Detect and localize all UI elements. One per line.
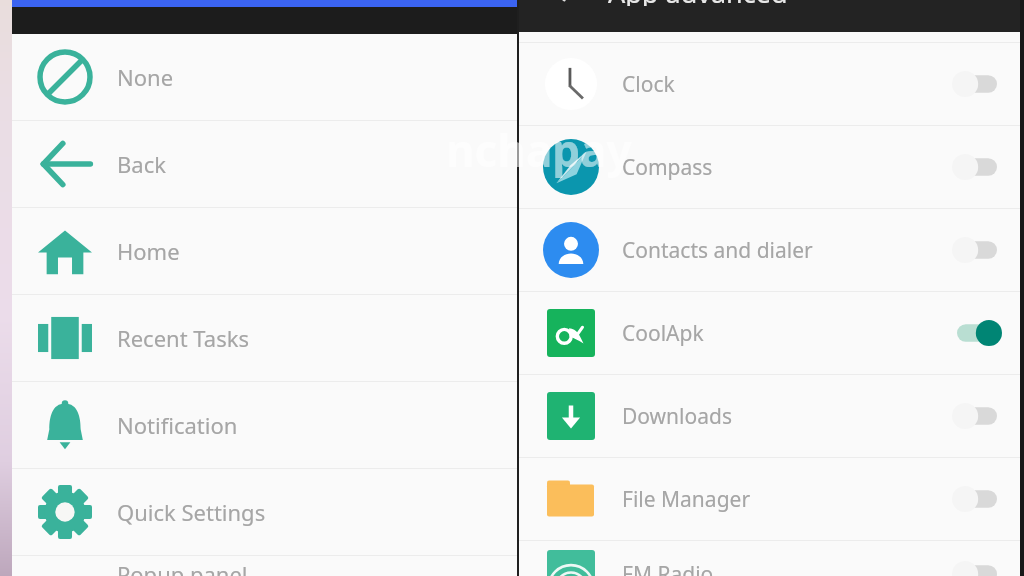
staticText: Quick Settings bbox=[117, 497, 266, 527]
button[interactable]: Toggle off bbox=[952, 399, 1002, 433]
button[interactable]: File Manager bbox=[519, 458, 1020, 541]
button[interactable]: Toggle on bbox=[952, 316, 1002, 350]
button[interactable]: Back bbox=[537, 0, 581, 6]
button[interactable]: Home bbox=[12, 208, 518, 295]
button[interactable]: Notification bbox=[12, 382, 518, 469]
staticText: CoolApk bbox=[622, 319, 952, 348]
staticText: Downloads bbox=[622, 402, 952, 431]
button[interactable]: Toggle off bbox=[952, 67, 1002, 101]
button[interactable]: Toggle off bbox=[952, 482, 1002, 516]
button[interactable]: Quick Settings bbox=[12, 469, 518, 556]
staticText: FM Radio bbox=[622, 560, 952, 576]
button[interactable]: Downloads bbox=[519, 375, 1020, 458]
staticText: Home bbox=[117, 236, 180, 266]
button[interactable]: Toggle off bbox=[952, 150, 1002, 184]
button[interactable]: FM Radio bbox=[519, 541, 1020, 576]
staticText: Recent Tasks bbox=[117, 323, 249, 353]
staticText: App advanced bbox=[608, 0, 788, 6]
staticText: Notification bbox=[117, 410, 238, 440]
button[interactable]: Clock bbox=[519, 43, 1020, 126]
button[interactable]: Popup panel bbox=[12, 556, 518, 576]
button[interactable]: Recent Tasks bbox=[12, 295, 518, 382]
button[interactable]: Toggle off bbox=[952, 233, 1002, 267]
staticText: Contacts and dialer bbox=[622, 236, 952, 265]
staticText: nchapay bbox=[446, 120, 632, 180]
staticText: Back bbox=[117, 149, 166, 179]
staticText: Clock bbox=[622, 70, 952, 99]
button[interactable]: CoolApk bbox=[519, 292, 1020, 375]
button[interactable]: Contacts and dialer bbox=[519, 209, 1020, 292]
staticText: File Manager bbox=[622, 485, 952, 514]
button[interactable]: Back bbox=[12, 121, 518, 208]
button[interactable]: Toggle off bbox=[952, 557, 1002, 576]
button[interactable]: None bbox=[12, 34, 518, 121]
staticText: Popup panel bbox=[117, 559, 248, 576]
staticText: None bbox=[117, 62, 174, 92]
staticText: Compass bbox=[622, 153, 952, 182]
button[interactable]: Compass bbox=[519, 126, 1020, 209]
